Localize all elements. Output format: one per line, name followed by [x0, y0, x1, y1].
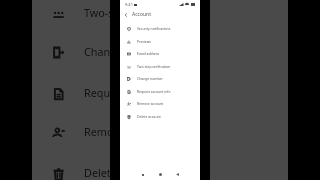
staticText: Two-step verification — [84, 4, 110, 20]
staticText: Two-step verification — [137, 64, 171, 69]
staticText: Email address — [137, 51, 160, 56]
button[interactable]: Request account info — [120, 85, 200, 98]
staticText: Account — [132, 11, 152, 18]
button[interactable]: Change number — [120, 72, 200, 85]
staticText: Remove account — [137, 101, 164, 106]
staticText: Request account info — [137, 89, 171, 94]
button[interactable]: Remove account — [32, 110, 110, 152]
staticText: Delete account — [137, 114, 161, 119]
button[interactable]: Two-step verification — [120, 60, 200, 73]
staticText: Change number — [84, 43, 110, 59]
staticText: 9:41 — [125, 2, 133, 7]
button[interactable]: Change number — [32, 30, 110, 72]
button[interactable]: Remove account — [120, 97, 200, 110]
button[interactable]: Recent apps — [139, 171, 146, 178]
button[interactable]: Delete account — [120, 110, 200, 123]
button[interactable]: Back — [122, 11, 130, 19]
staticText: Security notifications — [137, 26, 171, 31]
staticText: Previews — [137, 39, 151, 44]
button[interactable]: Delete account — [32, 152, 110, 180]
button[interactable]: Security notifications — [120, 22, 200, 35]
staticText: Delete account — [84, 164, 110, 180]
button[interactable]: Previews — [120, 35, 200, 48]
button[interactable]: Back — [174, 171, 181, 178]
button[interactable]: Two-step verification — [32, 0, 110, 33]
staticText: Remove account — [84, 123, 110, 139]
staticText: Change number — [137, 76, 163, 81]
button[interactable]: Email address — [120, 47, 200, 60]
button[interactable]: Home — [157, 171, 164, 178]
staticText: Request account info — [84, 84, 110, 100]
button[interactable]: Request account info — [32, 72, 110, 113]
